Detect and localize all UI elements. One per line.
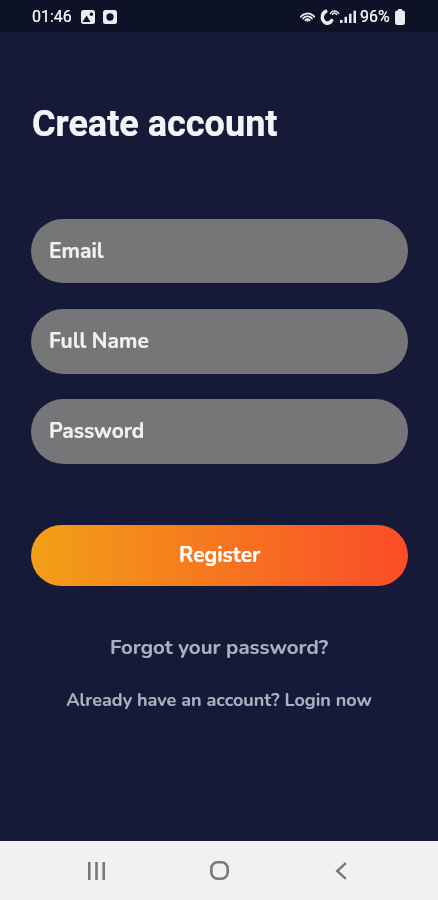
- button[interactable]: Forgot your password?: [0, 633, 438, 661]
- button[interactable]: Back: [303, 841, 379, 900]
- button[interactable]: Password: [31, 399, 408, 464]
- staticText: Password: [49, 417, 145, 446]
- button[interactable]: Full Name: [31, 309, 408, 374]
- staticText: Full Name: [49, 327, 149, 356]
- staticText: 01:46: [32, 7, 72, 26]
- button[interactable]: Register: [31, 525, 408, 586]
- staticText: 96%: [360, 7, 390, 26]
- button[interactable]: Email: [31, 219, 408, 283]
- button[interactable]: Recent apps: [58, 841, 134, 900]
- button[interactable]: Already have an account? Login now: [0, 688, 438, 713]
- staticText: Create account: [32, 103, 278, 145]
- button[interactable]: Home: [181, 841, 257, 900]
- staticText: Register: [179, 541, 261, 570]
- staticText: Email: [49, 237, 104, 266]
